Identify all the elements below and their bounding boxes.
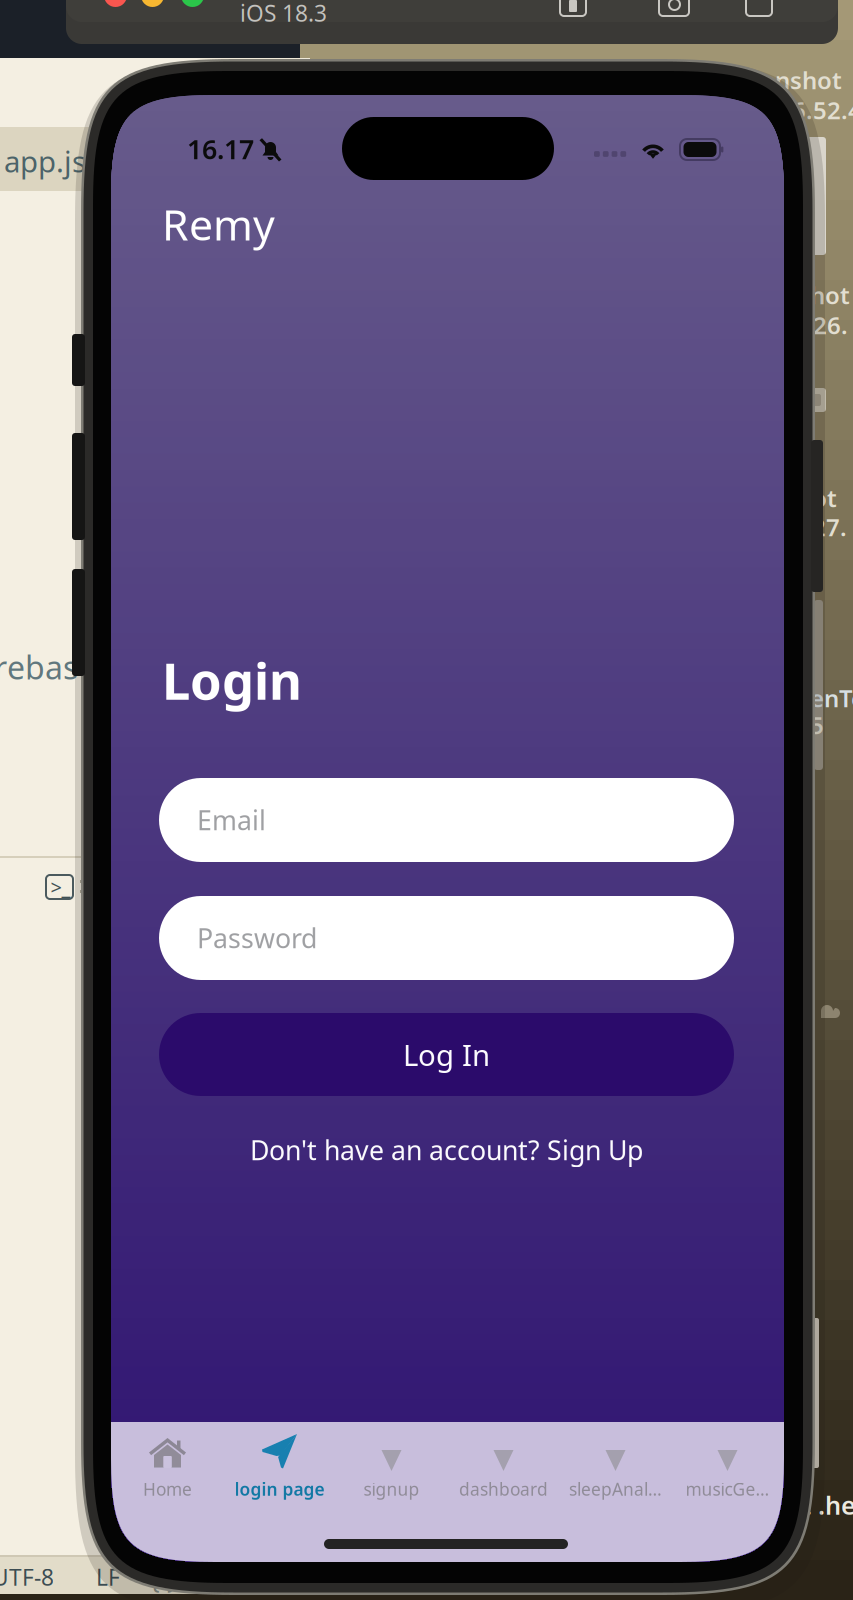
button[interactable]: Email [159,778,734,862]
staticText: login page [234,1477,324,1500]
staticText: LF [96,1562,120,1592]
staticText: hot [810,279,850,311]
staticText: .26. [806,309,848,341]
staticText: Log In [403,1035,490,1074]
staticText: 27. [812,511,847,543]
staticText: UTF-8 [0,1562,54,1592]
staticText: Remy [162,196,275,252]
staticText: enTe [810,682,853,714]
staticText: musicGe… [685,1477,769,1500]
staticText: Home [143,1477,192,1500]
staticText: ot [812,482,837,514]
staticText: rebase [0,646,96,688]
staticText: Login [162,646,302,714]
staticText: dashboard [459,1477,548,1500]
button[interactable]: Don't have an account? Sign Up [159,1128,734,1172]
staticText: 16.17 [187,131,254,167]
staticText: 16.52.4 [778,94,853,126]
staticText: sleepAnal… [569,1477,662,1500]
button[interactable]: login page [223,1428,335,1516]
button[interactable]: Password [159,896,734,980]
button[interactable]: signup [335,1428,447,1516]
button[interactable]: dashboard [447,1428,559,1516]
staticText: app.js [4,141,86,180]
staticText: iOS 18.3 [240,0,327,28]
staticText: { } [150,1562,177,1596]
staticText: >_ [50,874,70,900]
staticText: signup [363,1477,419,1500]
staticText: Email [197,802,266,838]
staticText: t .he [801,1488,853,1522]
button[interactable]: Home [111,1428,223,1516]
button[interactable]: musicGe… [671,1428,783,1516]
staticText: Password [197,920,317,956]
button[interactable]: Log In [159,1013,734,1096]
button[interactable]: sleepAnal… [559,1428,671,1516]
staticText: Screenshot [712,64,842,96]
staticText: 5 [810,709,824,741]
staticText: Don't have an account? Sign Up [250,1132,643,1168]
